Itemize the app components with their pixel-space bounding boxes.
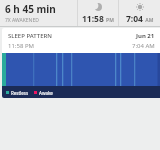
staticText: Jun 21: [136, 32, 155, 40]
button[interactable]: 11:58 PM: [78, 0, 118, 26]
staticText: 7:04 AM: [126, 13, 154, 25]
button[interactable]: 6 h 45 min: [5, 2, 77, 26]
staticText: 6 h 45 min: [5, 2, 56, 16]
staticText: 7:04 AM: [132, 42, 155, 50]
staticText: Awake: [39, 90, 53, 96]
staticText: 11:58 PM: [8, 42, 34, 50]
staticText: 7X AWAKENED: [5, 17, 39, 24]
staticText: Restless: [11, 90, 29, 96]
button[interactable]: SLEEP PATTERN: [2, 28, 160, 98]
button[interactable]: 7:04 AM: [119, 0, 160, 26]
staticText: SLEEP PATTERN: [8, 32, 52, 40]
staticText: 11:58 PM: [82, 13, 114, 25]
